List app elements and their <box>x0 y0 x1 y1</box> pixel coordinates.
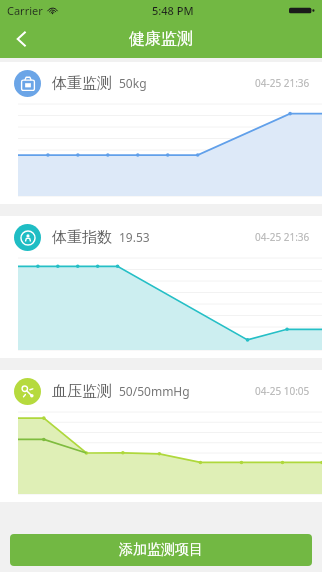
button[interactable]: 血压监测 <box>0 370 322 502</box>
staticText: Carrier <box>7 3 43 18</box>
button[interactable]: 体重指数 <box>0 216 322 358</box>
button[interactable]: Back <box>0 20 44 58</box>
staticText: 04-25 21:36 <box>255 230 310 244</box>
staticText: 50/50mmHg <box>119 383 190 399</box>
staticText: 血压监测 <box>52 382 112 401</box>
staticText: 04-25 21:36 <box>255 76 310 90</box>
staticText: 体重监测 <box>52 74 112 93</box>
staticText: 体重指数 <box>52 228 112 247</box>
button[interactable]: 添加监测项目 <box>10 534 312 566</box>
staticText: 5:48 PM <box>152 3 194 18</box>
button[interactable]: 体重监测 <box>0 62 322 204</box>
staticText: 添加监测项目 <box>119 541 203 559</box>
staticText: 04-25 10:05 <box>255 384 310 398</box>
staticText: 健康监测 <box>129 29 193 49</box>
staticText: 50kg <box>119 75 147 91</box>
staticText: 19.53 <box>119 229 150 245</box>
